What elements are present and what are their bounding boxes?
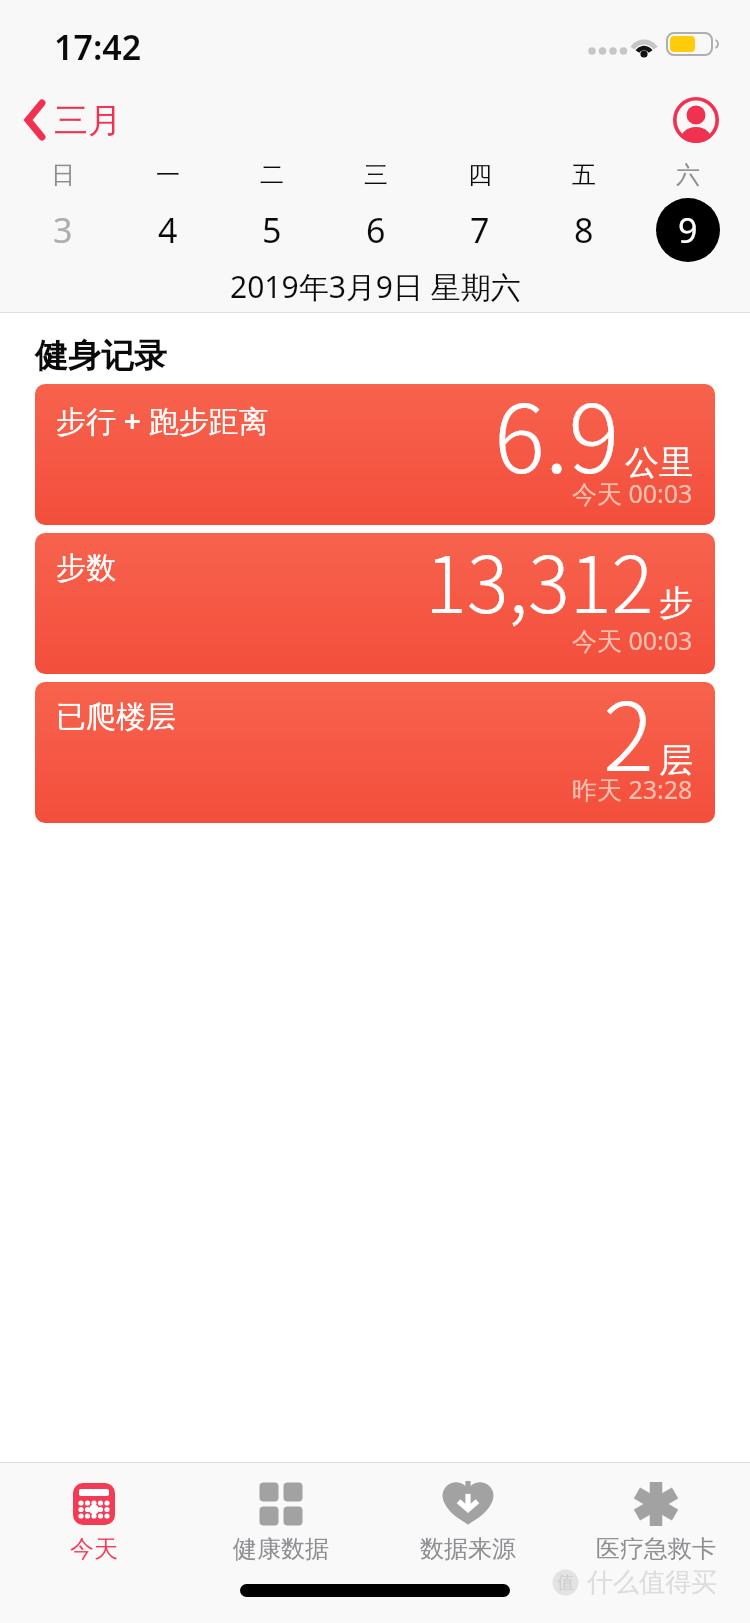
staticText: 健康数据 — [233, 1534, 329, 1564]
staticText: 医疗急救卡 — [596, 1534, 716, 1564]
staticText: 二 — [260, 160, 284, 190]
staticText: 什么值得买 — [587, 1566, 717, 1599]
staticText: 9 — [678, 207, 698, 253]
button[interactable]: 已爬楼层 — [35, 682, 715, 823]
staticText: 四 — [468, 160, 492, 190]
staticText: 2019年3月9日 星期六 — [230, 266, 521, 307]
button[interactable]: 步数 — [35, 533, 715, 674]
staticText: 层 — [659, 739, 693, 782]
staticText: 健身记录 — [35, 335, 167, 377]
staticText: 今天 00:03 — [572, 623, 693, 657]
staticText: 3 — [53, 207, 73, 253]
staticText: 17:42 — [54, 24, 142, 70]
staticText: 13,312 — [425, 533, 654, 636]
staticText: 6 — [366, 207, 386, 253]
staticText: 值 — [557, 1572, 574, 1593]
staticText: 公里 — [625, 441, 693, 484]
button[interactable]: 三月 — [24, 96, 122, 144]
staticText: 三 — [364, 160, 388, 190]
button[interactable]: 医疗急救卡 — [562, 1481, 750, 1564]
staticText: 五 — [572, 160, 596, 190]
staticText: 昨天 23:28 — [572, 772, 693, 806]
staticText: 5 — [262, 207, 282, 253]
staticText: 步 — [659, 581, 693, 624]
staticText: 数据来源 — [420, 1534, 516, 1564]
staticText: 今天 — [70, 1534, 118, 1564]
button[interactable]: 步行 + 跑步距离 — [35, 384, 715, 525]
staticText: 4 — [158, 207, 178, 253]
button[interactable]: 9 — [656, 198, 720, 262]
staticText: 步行 + 跑步距离 — [56, 400, 269, 441]
staticText: 三月 — [54, 99, 122, 142]
staticText: 日 — [51, 160, 75, 190]
staticText: 步数 — [56, 549, 116, 587]
staticText: 7 — [470, 207, 490, 253]
staticText: 六 — [676, 160, 700, 190]
staticText: 一 — [156, 160, 180, 190]
staticText: 8 — [574, 207, 594, 253]
button[interactable]: 数据来源 — [374, 1481, 562, 1564]
button[interactable] — [673, 97, 719, 143]
staticText: 已爬楼层 — [56, 698, 176, 736]
button[interactable]: 今天 — [0, 1481, 187, 1564]
staticText: 2 — [603, 682, 654, 799]
staticText: 6.9 — [494, 384, 620, 501]
staticText: 今天 00:03 — [572, 476, 693, 510]
button[interactable]: 健康数据 — [187, 1481, 374, 1564]
